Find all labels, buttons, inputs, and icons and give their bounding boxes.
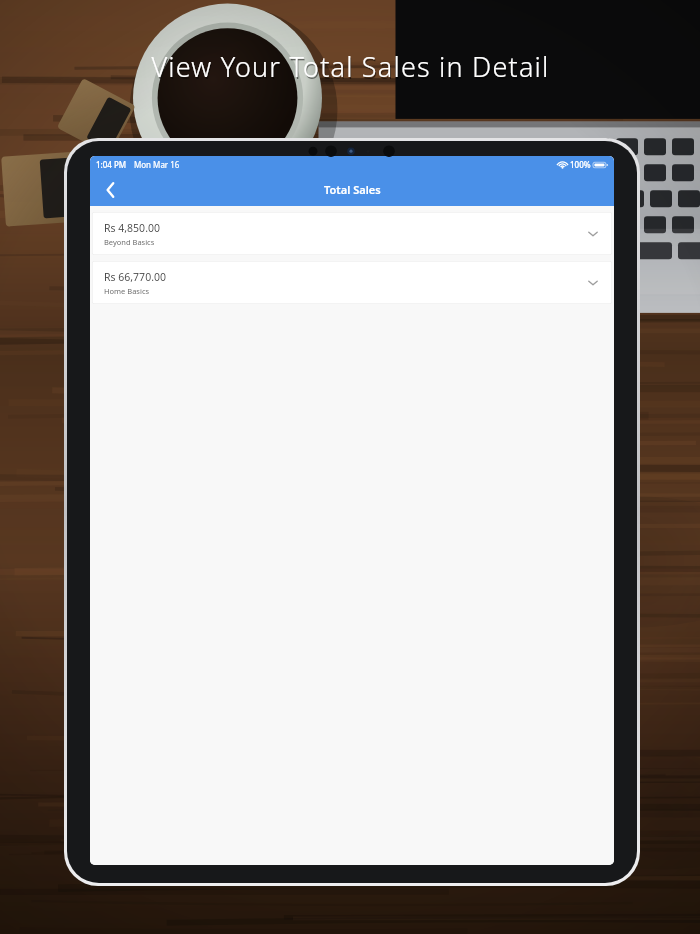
staticText: Rs 4,850.00 [104, 221, 160, 235]
staticText: 1:04 PM [96, 159, 127, 170]
staticText: 100% [570, 159, 591, 170]
staticText: Rs 66,770.00 [104, 270, 166, 284]
button[interactable]: Rs 4,850.00 [92, 212, 612, 255]
staticText: View Your Total Sales in Detail [152, 50, 551, 87]
button[interactable]: Expand [582, 223, 604, 245]
staticText: Total Sales [324, 182, 381, 197]
staticText: Mon Mar 16 [134, 159, 180, 170]
button[interactable]: Back [90, 173, 130, 206]
staticText: Beyond Basics [104, 237, 155, 247]
staticText: View Your Total Sales in Detail [151, 48, 550, 85]
button[interactable]: Expand [582, 272, 604, 294]
staticText: Home Basics [104, 286, 150, 296]
button[interactable]: Rs 66,770.00 [92, 261, 612, 304]
